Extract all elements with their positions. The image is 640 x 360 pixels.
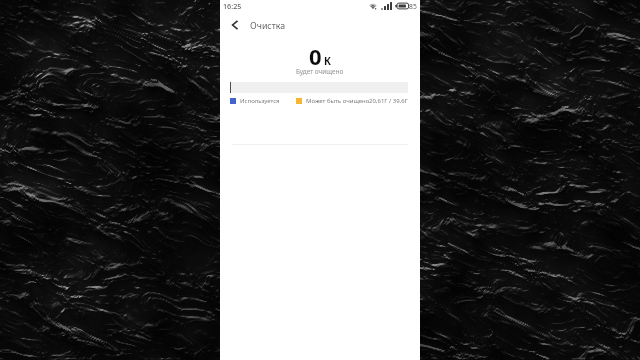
other: Wi-Fi — [369, 2, 377, 10]
other: Сигнал сети — [381, 2, 392, 10]
staticText: 20,61Г / 39,6Г — [369, 97, 408, 105]
other: Батарея 85% — [395, 2, 410, 10]
staticText: К — [324, 54, 331, 68]
staticText: Будет очищено — [296, 67, 344, 76]
staticText: Используется — [240, 97, 280, 105]
staticText: 85 — [409, 2, 417, 11]
staticText: Может быть очищено — [306, 97, 370, 105]
staticText: Очистка — [250, 20, 286, 32]
staticText: 16:25 — [223, 1, 242, 11]
button[interactable]: Назад — [224, 14, 246, 36]
button[interactable] — [230, 82, 408, 93]
staticText: 0 — [309, 41, 322, 71]
